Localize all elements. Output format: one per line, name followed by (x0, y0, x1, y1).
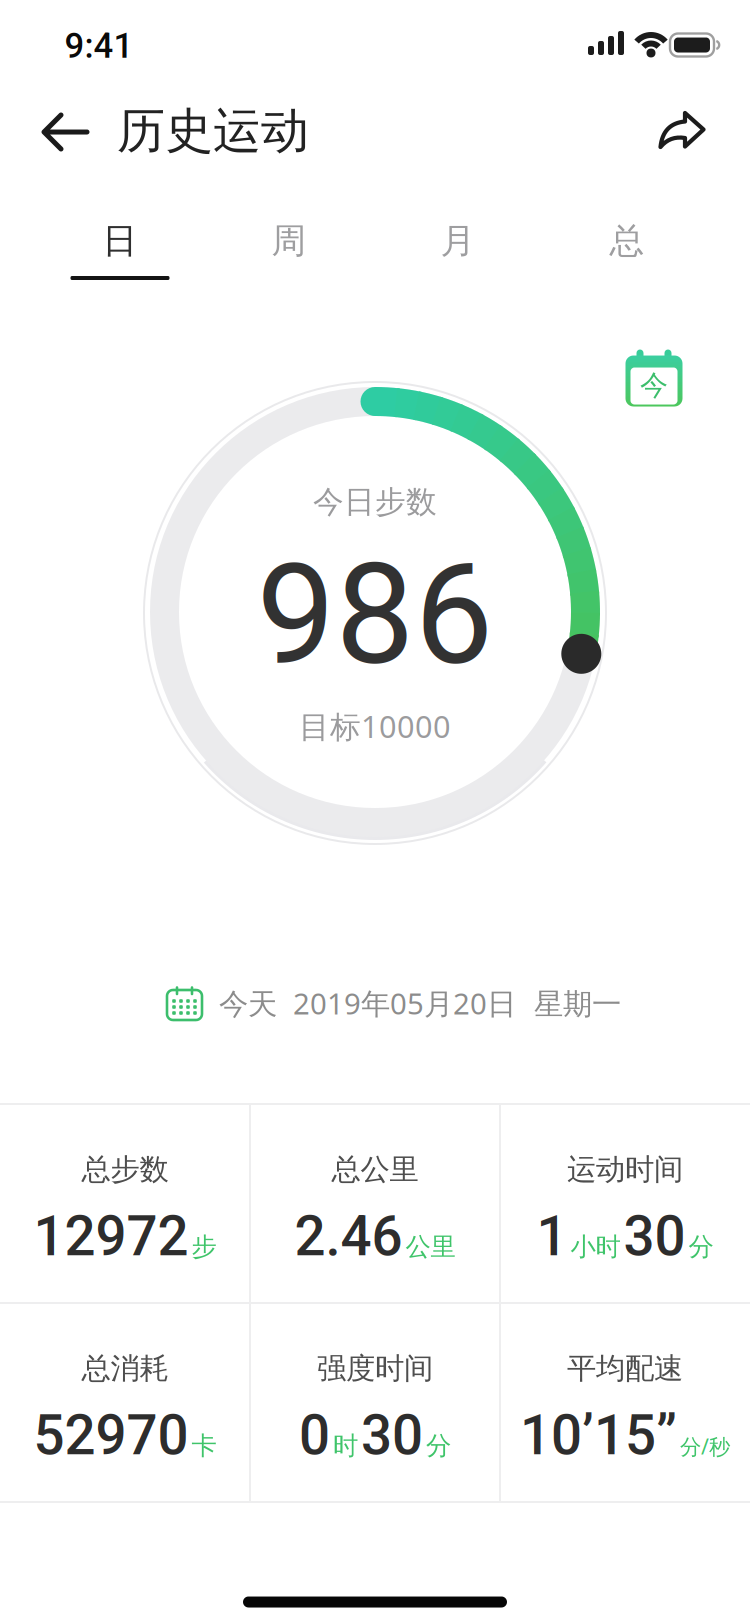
button[interactable]: 日 (45, 205, 195, 277)
staticText: 52970 (33, 1403, 188, 1468)
staticText: 目标10000 (299, 706, 451, 746)
staticText: 0 (299, 1403, 330, 1468)
staticText: 今天 2019年05月20日 星期一 (219, 983, 621, 1022)
staticText: 运动时间 (567, 1151, 683, 1187)
button[interactable]: 总步数 (0, 1104, 250, 1302)
staticText: 公里 (405, 1231, 455, 1262)
button[interactable]: 今天 2019年05月20日 星期一 (167, 975, 621, 1031)
staticText: 总 (609, 220, 644, 262)
staticText: 历史运动 (117, 101, 309, 160)
button[interactable]: 总消耗 (0, 1303, 250, 1501)
button[interactable]: 月 (383, 205, 533, 277)
button[interactable]: 平均配速 (500, 1303, 750, 1501)
staticText: 日 (102, 220, 137, 262)
staticText: 平均配速 (567, 1350, 683, 1386)
staticText: 步 (191, 1231, 216, 1262)
button[interactable]: 今 (625, 348, 683, 407)
staticText: 今日步数 (313, 483, 437, 521)
staticText: 今 (640, 368, 668, 403)
staticText: 时 (333, 1430, 358, 1461)
staticText: 强度时间 (317, 1350, 433, 1386)
button[interactable]: 运动时间 (500, 1104, 750, 1302)
button[interactable]: 强度时间 (250, 1303, 500, 1501)
button[interactable]: 总 (552, 205, 702, 277)
staticText: 2.46 (294, 1204, 402, 1269)
staticText: 分 (688, 1231, 713, 1262)
staticText: 总步数 (81, 1151, 168, 1187)
staticText: 30 (361, 1403, 423, 1468)
staticText: 总公里 (331, 1151, 418, 1187)
button[interactable]: 总公里 (250, 1104, 500, 1302)
staticText: 月 (440, 220, 475, 262)
button[interactable] (36, 107, 96, 157)
staticText: 12972 (33, 1204, 188, 1269)
staticText: 分 (426, 1430, 451, 1461)
staticText: 小时 (570, 1231, 620, 1262)
button[interactable]: 周 (214, 205, 364, 277)
staticText: 30 (623, 1204, 685, 1269)
staticText: 1 (536, 1204, 567, 1269)
staticText: 周 (271, 220, 306, 262)
staticText: 卡 (191, 1430, 216, 1461)
staticText: 分/秒 (680, 1432, 730, 1460)
button[interactable] (654, 107, 710, 153)
staticText: 9:41 (64, 26, 133, 66)
staticText: 总消耗 (81, 1350, 168, 1386)
staticText: 10’15” (520, 1403, 677, 1468)
staticText: 986 (256, 533, 493, 697)
